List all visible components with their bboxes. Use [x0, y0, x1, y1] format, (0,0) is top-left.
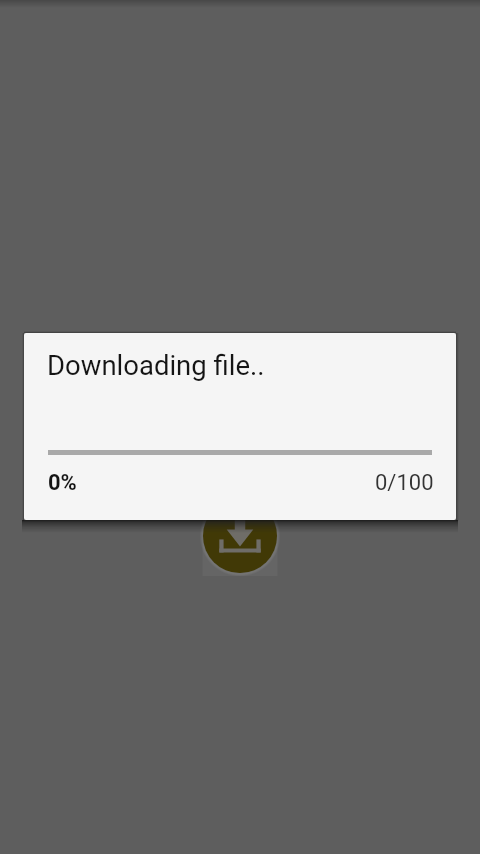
staticText: 0% [48, 470, 77, 496]
staticText: Downloading file.. [47, 349, 265, 381]
button[interactable]: Download [198, 494, 282, 578]
staticText: 0/100 [375, 470, 434, 496]
